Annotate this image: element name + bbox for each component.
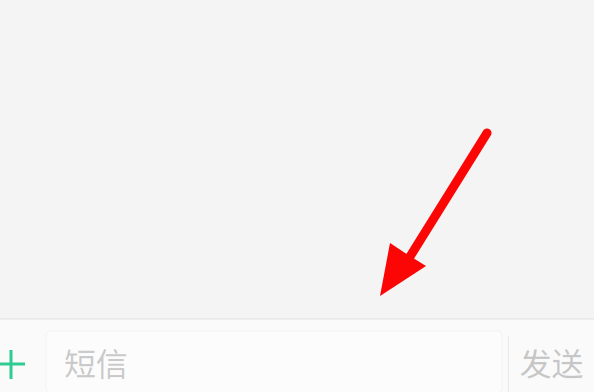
button[interactable]: 发送 [509, 336, 594, 392]
button[interactable]: Add attachment [0, 326, 46, 392]
staticText: 发送 [519, 339, 583, 385]
button[interactable]: 短信 [46, 331, 502, 392]
staticText: 短信 [64, 339, 128, 385]
